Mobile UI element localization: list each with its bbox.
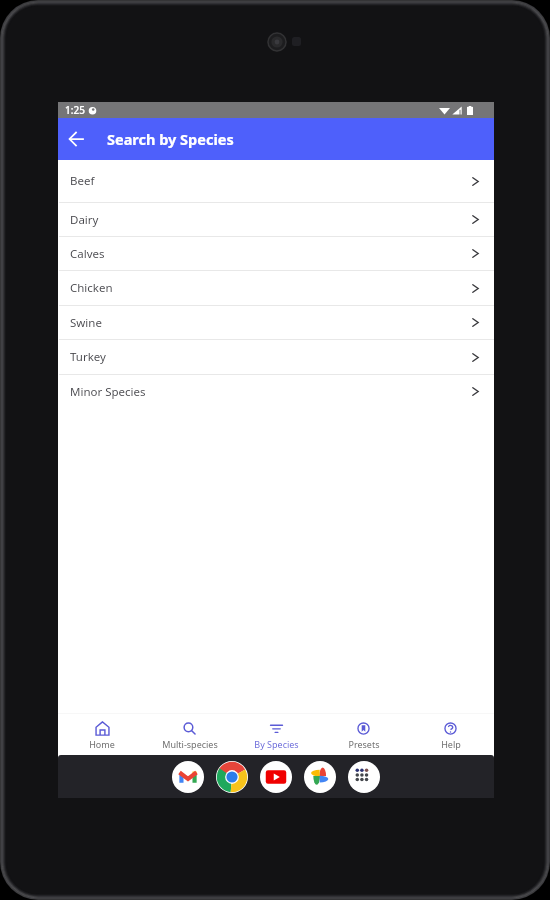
button[interactable]: Minor Species	[58, 374, 494, 408]
button[interactable]: All apps	[348, 761, 380, 793]
staticText: Turkey	[70, 349, 106, 365]
button[interactable]: Swine	[58, 305, 494, 339]
staticText: Swine	[70, 315, 102, 331]
staticText: Help	[441, 738, 461, 750]
staticText: Beef	[70, 173, 95, 189]
button[interactable]: Dairy	[58, 202, 494, 236]
staticText: Presets	[348, 738, 380, 750]
button[interactable]: Chicken	[58, 270, 494, 305]
button[interactable]: YouTube	[260, 761, 292, 793]
staticText: Home	[89, 738, 115, 750]
staticText: Minor Species	[70, 384, 146, 400]
staticText: Dairy	[70, 212, 99, 228]
button[interactable]: Help	[407, 713, 494, 755]
staticText: Chicken	[70, 280, 113, 296]
button[interactable]: Presets	[320, 713, 407, 755]
button[interactable]: By Species	[233, 713, 320, 755]
staticText: Calves	[70, 246, 105, 262]
button[interactable]: Calves	[58, 236, 494, 270]
button[interactable]: Back	[62, 125, 90, 153]
staticText: 1:25	[65, 103, 85, 117]
button[interactable]: Chrome	[216, 761, 248, 793]
button[interactable]: Home	[58, 713, 146, 755]
button[interactable]: Turkey	[58, 339, 494, 374]
button[interactable]: Gmail	[172, 761, 204, 793]
button[interactable]: Photos	[304, 761, 336, 793]
button[interactable]: Multi-species	[146, 713, 233, 755]
button[interactable]: Beef	[58, 160, 494, 202]
staticText: Search by Species	[107, 129, 234, 149]
staticText: By Species	[254, 738, 299, 750]
staticText: Multi-species	[162, 738, 218, 750]
